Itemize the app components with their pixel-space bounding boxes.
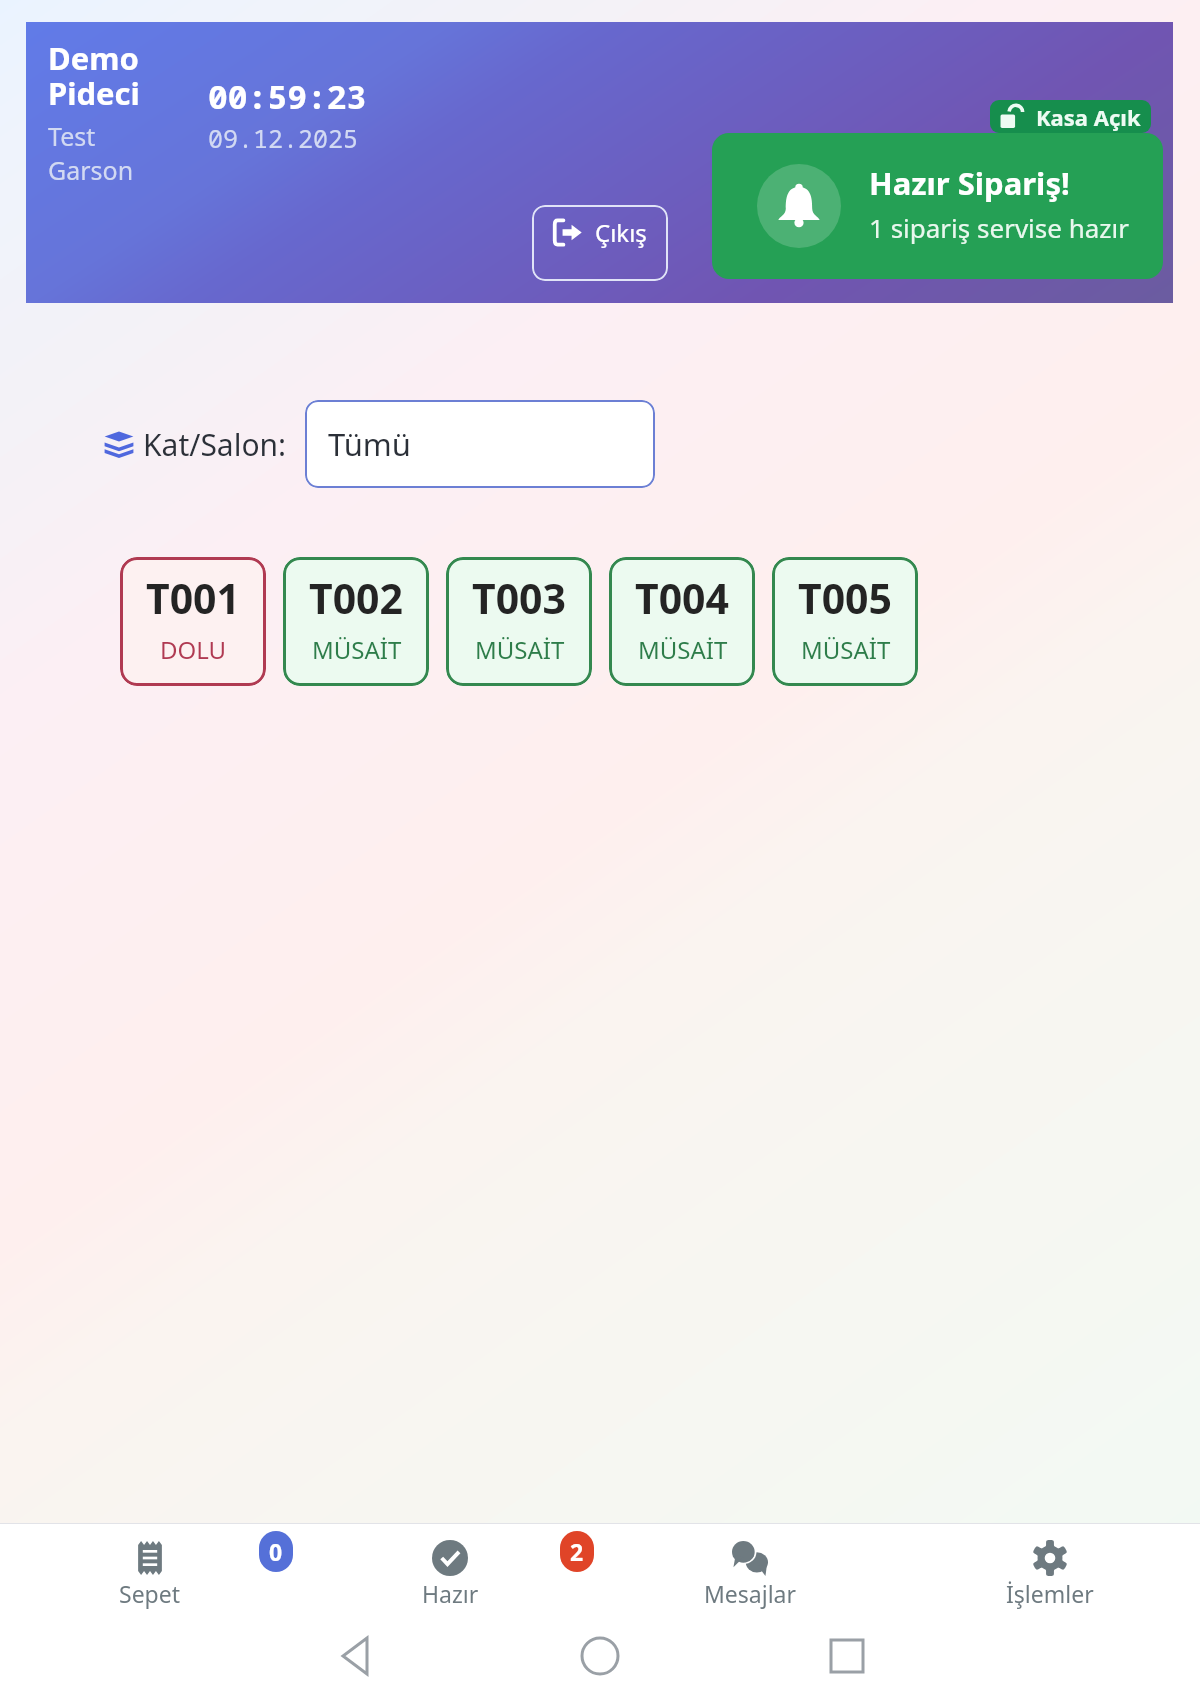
staticText: T003 [472,570,567,626]
button[interactable]: T003 [446,557,592,686]
button[interactable]: T002 [283,557,429,686]
staticText: Çıkış [595,216,647,249]
staticText: Hazır Sipariş! [869,162,1070,204]
staticText: Demo Pideci [48,37,140,115]
staticText: Tümü [328,423,411,465]
staticText: Test Garson [48,119,134,187]
other: Sepet [132,1540,168,1576]
other: Hazır [432,1540,468,1576]
staticText: T002 [309,570,404,626]
button[interactable]: Çıkış [532,205,668,281]
staticText: T005 [798,570,893,626]
staticText: MÜSAİT [638,633,728,666]
button[interactable]: Hazır Sipariş! [712,133,1163,279]
button[interactable]: T001 [120,557,266,686]
staticText: Mesajlar [704,1578,797,1609]
button[interactable]: Kasa Açık [990,100,1151,133]
staticText: 09.12.2025 [208,121,359,155]
other: Çıkış [553,218,582,247]
staticText: T001 [146,570,241,626]
button[interactable]: Sepet [0,1523,300,1623]
button[interactable]: Hazır [300,1523,600,1623]
button[interactable]: T004 [609,557,755,686]
other: İşlemler [1032,1540,1068,1576]
staticText: Kasa Açık [1036,102,1141,132]
staticText: MÜSAİT [801,633,891,666]
staticText: 1 sipariş servise hazır [869,210,1130,245]
staticText: İşlemler [1006,1578,1094,1609]
staticText: Sepet [119,1578,181,1609]
button[interactable]: Mesajlar [600,1523,900,1623]
staticText: 00:59:23 [208,74,367,119]
button[interactable]: T005 [772,557,918,686]
button[interactable]: İşlemler [900,1523,1200,1623]
staticText: 2 [570,1536,584,1567]
staticText: T004 [635,570,730,626]
staticText: DOLU [160,633,227,666]
other: Mesajlar [732,1540,768,1576]
staticText: Kat/Salon: [143,424,287,465]
staticText: MÜSAİT [475,633,565,666]
button[interactable]: Tümü [305,400,655,488]
staticText: 0 [269,1536,283,1567]
staticText: MÜSAİT [312,633,402,666]
staticText: Hazır [422,1578,479,1609]
